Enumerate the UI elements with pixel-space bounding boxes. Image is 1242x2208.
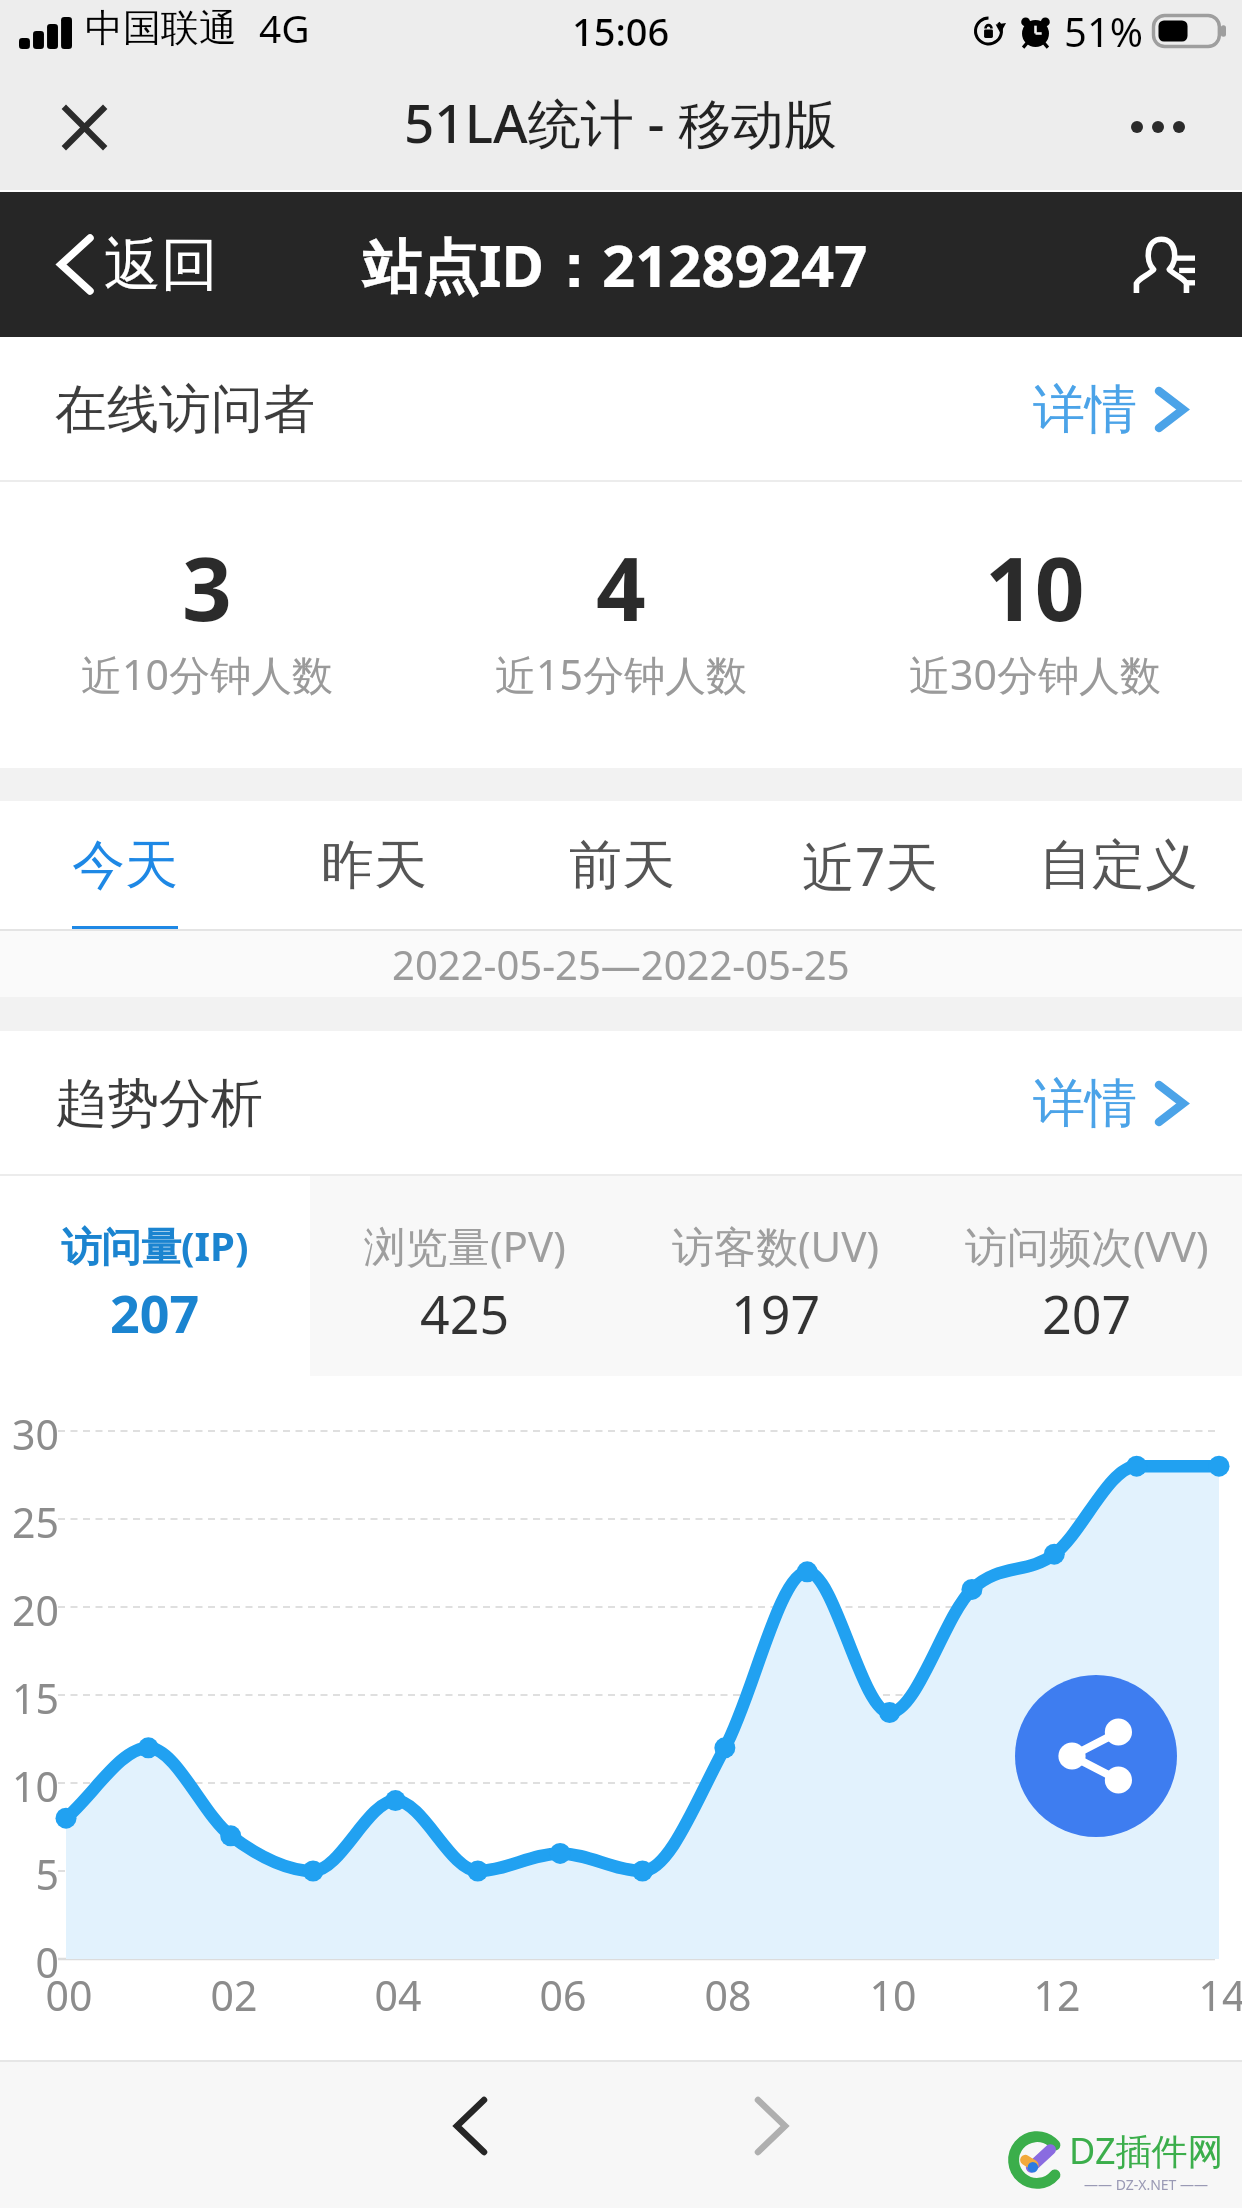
staticText: 详情 [1033,1071,1137,1137]
button[interactable]: 详情 [1033,337,1183,482]
staticText: 00 [34,1967,104,2023]
staticText: 51LA统计 - 移动版 [404,86,838,158]
staticText: 3 [182,528,232,646]
staticText: 详情 [1033,377,1137,443]
button[interactable]: 10 [828,482,1242,768]
button[interactable]: Close [40,83,128,171]
staticText: 站点ID：21289247 [363,225,868,304]
button[interactable]: Share [1015,1675,1177,1837]
button[interactable]: 返回 [61,192,218,337]
staticText: 30 [9,1406,59,1462]
button[interactable]: 访问频次(VV) [931,1176,1242,1376]
staticText: 207 [1042,1278,1132,1349]
staticText: 近15分钟人数 [495,646,747,702]
staticText: 前天 [569,832,675,899]
staticText: 25 [9,1494,59,1550]
staticText: 浏览量(PV) [364,1217,566,1274]
button[interactable]: 3 [0,482,414,768]
staticText: 趋势分析 [55,1071,263,1137]
button[interactable]: 昨天 [249,801,498,931]
staticText: 10 [9,1758,59,1814]
staticText: 4 [596,528,646,646]
staticText: 14 [1187,1967,1242,2023]
button[interactable]: 前天 [498,801,746,931]
button[interactable]: Back [426,2082,514,2170]
staticText: 自定义 [1039,832,1198,899]
button[interactable]: Forward [727,2082,815,2170]
staticText: 近7天 [802,829,939,901]
staticText: 12 [1022,1967,1092,2023]
staticText: 06 [528,1967,598,2023]
staticText: —— DZ-X.NET —— [1084,2175,1209,2194]
staticText: 02 [199,1967,269,2023]
staticText: 04 [363,1967,433,2023]
button[interactable]: 详情 [1033,1031,1183,1176]
staticText: 访问频次(VV) [965,1217,1209,1274]
staticText: 425 [420,1278,510,1349]
staticText: DZ插件网 [1069,2126,1224,2175]
staticText: 0 [9,1934,59,1990]
staticText: 5 [9,1846,59,1902]
staticText: 15:06 [572,5,670,57]
staticText: 197 [731,1278,821,1349]
staticText: 10 [858,1967,928,2023]
button[interactable]: 自定义 [994,801,1242,931]
button[interactable]: 近7天 [746,801,994,931]
staticText: 中国联通 [85,4,237,52]
staticText: 207 [110,1277,200,1348]
staticText: 2022-05-25—2022-05-25 [392,937,850,991]
staticText: 近30分钟人数 [909,646,1161,702]
staticText: 4G [259,1,310,54]
staticText: 51% [1064,4,1143,58]
staticText: 近10分钟人数 [81,646,333,702]
staticText: 返回 [104,229,218,301]
staticText: 15 [9,1670,59,1726]
staticText: 访客数(UV) [672,1217,880,1274]
staticText: 20 [9,1582,59,1638]
staticText: 今天 [72,832,178,899]
staticText: 08 [693,1967,763,2023]
button[interactable]: 今天 [0,801,249,931]
staticText: 在线访问者 [55,377,315,443]
button[interactable]: Account [1124,225,1204,305]
button[interactable]: More options [1114,83,1202,171]
button[interactable]: 4 [414,482,828,768]
button[interactable]: 访问量(IP) [0,1176,310,1376]
staticText: 访问量(IP) [61,1218,249,1273]
staticText: 10 [985,528,1085,646]
staticText: 昨天 [321,832,427,899]
button[interactable]: 浏览量(PV) [310,1176,620,1376]
button[interactable]: 访客数(UV) [620,1176,931,1376]
